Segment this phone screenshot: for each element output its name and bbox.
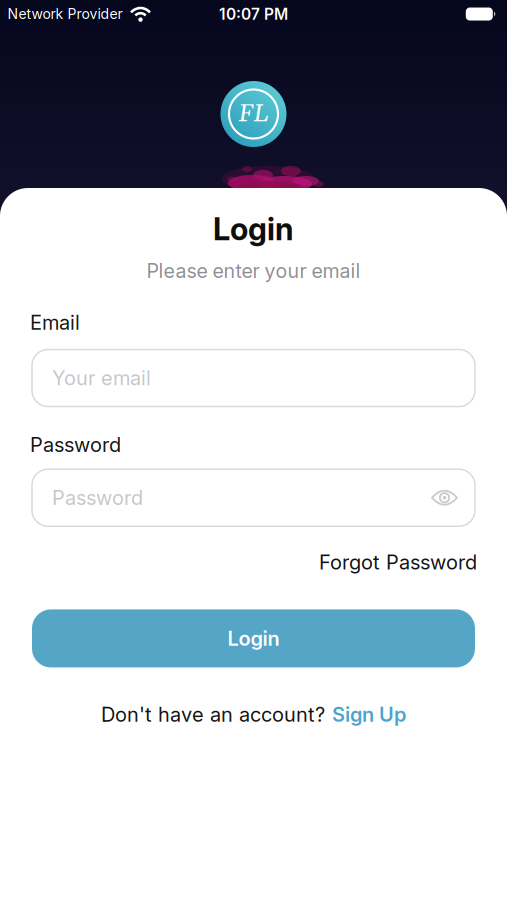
staticText: FL [238, 98, 268, 130]
button[interactable]: Show password [431, 489, 458, 507]
button[interactable]: Sign Up [332, 702, 406, 727]
staticText: Password [52, 486, 143, 510]
staticText: Forgot Password [319, 550, 477, 574]
staticText: Email [30, 310, 80, 334]
staticText: Login [227, 626, 279, 650]
staticText: Password [30, 432, 121, 457]
staticText: Don't have an account? [101, 702, 325, 727]
button[interactable]: Login [32, 609, 475, 667]
staticText: Login [213, 210, 294, 248]
staticText: Sign Up [332, 702, 406, 727]
staticText: 10:07 PM [219, 5, 288, 23]
staticText: Please enter your email [146, 259, 360, 283]
button[interactable]: Forgot Password [319, 550, 477, 574]
staticText: Your email [52, 366, 151, 390]
staticText: Network Provider [7, 5, 122, 22]
button[interactable]: Password [32, 469, 475, 526]
button[interactable]: Your email [32, 349, 475, 406]
